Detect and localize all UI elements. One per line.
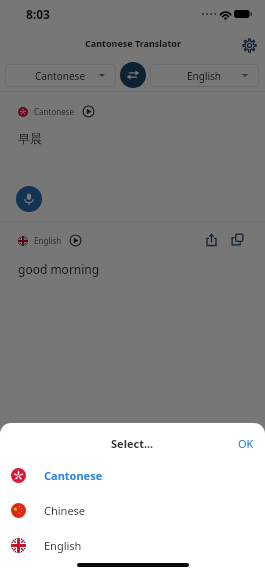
button[interactable]: English (150, 64, 259, 87)
staticText: Cantonese (44, 468, 103, 483)
staticText: Cantonese Translator (85, 37, 181, 49)
button[interactable]: Microphone (16, 186, 42, 212)
staticText: English (44, 538, 82, 553)
staticText: 早晨 (18, 131, 42, 146)
staticText: Select... (111, 436, 154, 451)
button[interactable]: English (0, 528, 265, 563)
button[interactable]: Swap languages (120, 62, 146, 88)
staticText: good morning (18, 261, 100, 277)
button[interactable]: Cantonese (5, 64, 116, 87)
button[interactable]: Play source (82, 105, 95, 118)
button[interactable]: Play translation (69, 234, 82, 247)
staticText: 8:03 (26, 6, 50, 22)
button[interactable]: OK (238, 436, 254, 451)
staticText: Chinese (44, 503, 86, 518)
button[interactable]: Share (204, 232, 219, 247)
staticText: OK (238, 436, 254, 451)
button[interactable]: Cantonese (0, 458, 265, 493)
button[interactable]: Settings (237, 33, 261, 57)
staticText: Cantonese (35, 69, 86, 83)
button[interactable]: Chinese (0, 493, 265, 528)
staticText: English (187, 69, 222, 83)
staticText: English (34, 235, 62, 246)
staticText: Cantonese (34, 106, 75, 117)
button[interactable]: Copy (230, 232, 245, 247)
